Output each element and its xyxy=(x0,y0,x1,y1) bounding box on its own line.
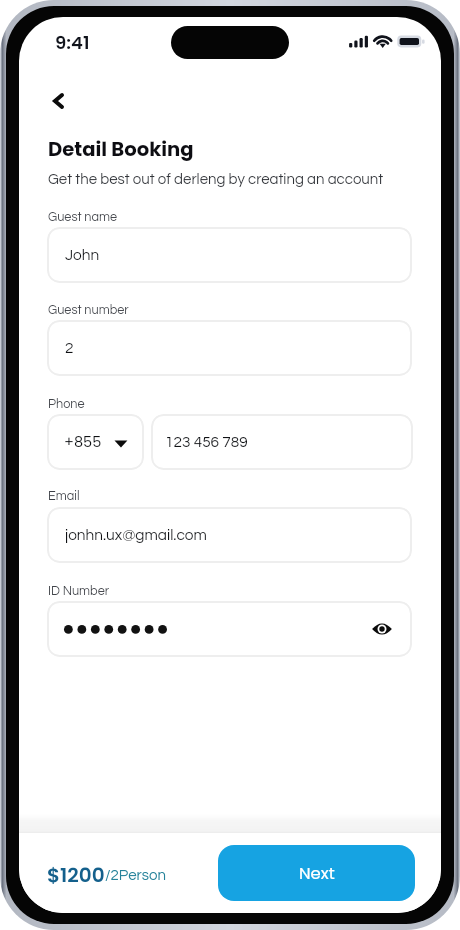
staticText: +855 xyxy=(64,432,102,452)
button[interactable]: Next xyxy=(218,845,415,901)
staticText: $1200 xyxy=(47,861,105,889)
staticText: 2 xyxy=(65,340,74,356)
button[interactable]: jonhn.ux@gmail.com xyxy=(47,507,412,563)
button[interactable]: 2 xyxy=(47,320,412,376)
staticText: John xyxy=(65,247,100,263)
staticText: jonhn.ux@gmail.com xyxy=(65,527,207,543)
staticText: ID Number xyxy=(48,585,110,598)
staticText: Get the best out of derleng by creating … xyxy=(48,172,384,187)
button[interactable]: John xyxy=(47,227,412,283)
button[interactable]: Show ID number xyxy=(369,618,395,640)
staticText: Email xyxy=(48,490,80,503)
button[interactable]: +855 xyxy=(47,414,144,470)
staticText: Guest number xyxy=(48,304,129,317)
staticText: /2Person xyxy=(105,868,166,883)
staticText: Phone xyxy=(48,398,85,411)
staticText: 123 456 789 xyxy=(165,434,248,450)
staticText: 9:41 xyxy=(55,30,90,55)
staticText: Detail Booking xyxy=(48,135,194,162)
button[interactable]: Show ID number xyxy=(47,601,412,657)
button[interactable]: Back xyxy=(43,87,75,119)
staticText: Guest name xyxy=(48,211,118,224)
button[interactable]: 123 456 789 xyxy=(151,414,413,470)
staticText: Next xyxy=(299,862,335,885)
